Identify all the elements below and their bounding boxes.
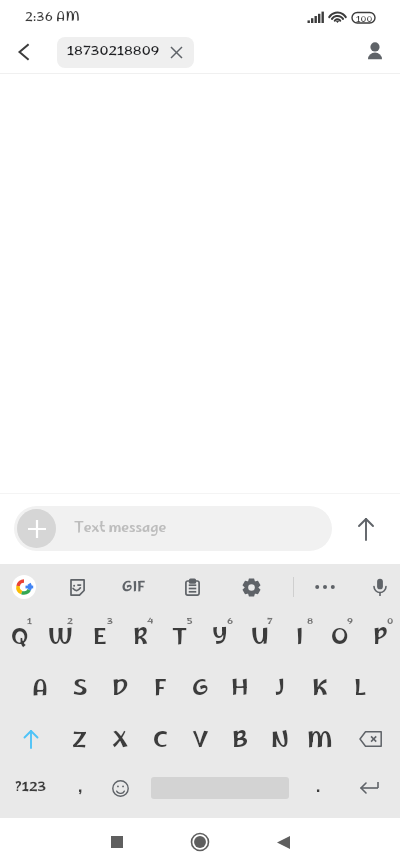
- button[interactable]: U: [240, 610, 280, 661]
- staticText: K: [312, 672, 328, 709]
- button[interactable]: J: [260, 661, 300, 712]
- staticText: 2: [67, 614, 73, 630]
- button[interactable]: Voice input: [363, 564, 397, 610]
- staticText: I: [296, 621, 304, 658]
- staticText: G: [192, 672, 209, 709]
- button[interactable]: ,: [60, 764, 100, 812]
- staticText: 100: [356, 13, 373, 28]
- staticText: 0: [387, 614, 394, 630]
- button[interactable]: I: [280, 610, 320, 661]
- staticText: 6: [227, 614, 234, 630]
- staticText: 3: [107, 614, 113, 630]
- staticText: X: [112, 724, 129, 761]
- staticText: GIF: [122, 577, 146, 600]
- button[interactable]: Y: [200, 610, 240, 661]
- button[interactable]: GIF: [117, 564, 151, 610]
- button[interactable]: Emoji: [100, 764, 140, 812]
- button[interactable]: 18730218809: [57, 37, 194, 68]
- button[interactable]: Q: [0, 610, 40, 661]
- button[interactable]: Google: [7, 564, 41, 610]
- staticText: 7: [267, 614, 273, 630]
- button[interactable]: Clipboard: [175, 564, 209, 610]
- button[interactable]: K: [300, 661, 340, 712]
- staticText: .: [316, 774, 321, 802]
- staticText: J: [275, 672, 285, 709]
- button[interactable]: Contact: [360, 37, 390, 67]
- staticText: ?123: [15, 777, 47, 800]
- staticText: D: [112, 672, 129, 709]
- staticText: W: [48, 621, 73, 658]
- staticText: Text message: [74, 517, 167, 541]
- button[interactable]: Stickers: [59, 564, 93, 610]
- button[interactable]: Send: [332, 506, 400, 551]
- staticText: N: [271, 724, 290, 761]
- button[interactable]: M: [300, 713, 340, 764]
- staticText: S: [73, 672, 88, 709]
- button[interactable]: .: [298, 764, 338, 812]
- button[interactable]: O: [320, 610, 360, 661]
- staticText: L: [354, 672, 367, 709]
- staticText: 4: [147, 614, 154, 630]
- staticText: 1: [27, 614, 32, 630]
- button[interactable]: Z: [60, 713, 100, 764]
- staticText: B: [232, 724, 249, 761]
- button[interactable]: A: [20, 661, 60, 712]
- button[interactable]: Home: [183, 825, 217, 859]
- button[interactable]: More options: [308, 564, 342, 610]
- staticText: A: [32, 672, 48, 709]
- button[interactable]: B: [220, 713, 260, 764]
- button[interactable]: T: [160, 610, 200, 661]
- button[interactable]: P: [360, 610, 400, 661]
- staticText: P: [373, 621, 388, 658]
- button[interactable]: Shift: [10, 713, 52, 764]
- staticText: Z: [72, 724, 88, 761]
- button[interactable]: H: [220, 661, 260, 712]
- button[interactable]: W: [40, 610, 80, 661]
- staticText: T: [172, 621, 188, 658]
- staticText: R: [133, 621, 148, 658]
- button[interactable]: Attach: [17, 509, 56, 548]
- staticText: 8: [307, 614, 314, 630]
- button[interactable]: C: [140, 713, 180, 764]
- button[interactable]: S: [60, 661, 100, 712]
- staticText: H: [231, 672, 249, 709]
- button[interactable]: N: [260, 713, 300, 764]
- button[interactable]: G: [180, 661, 220, 712]
- button[interactable]: R: [120, 610, 160, 661]
- button[interactable]: Back: [8, 36, 40, 68]
- staticText: U: [251, 621, 269, 658]
- staticText: E: [93, 621, 107, 658]
- button[interactable]: Settings: [234, 564, 268, 610]
- staticText: Q: [11, 621, 29, 658]
- staticText: V: [192, 724, 209, 761]
- button[interactable]: Enter: [346, 764, 392, 812]
- button[interactable]: V: [180, 713, 220, 764]
- button[interactable]: Back: [266, 825, 300, 859]
- button[interactable]: D: [100, 661, 140, 712]
- button[interactable]: Backspace: [350, 713, 392, 764]
- staticText: Y: [212, 621, 228, 658]
- button[interactable]: ?123: [8, 764, 54, 812]
- staticText: C: [153, 724, 168, 761]
- button[interactable]: Attach: [14, 506, 332, 551]
- button[interactable]: F: [140, 661, 180, 712]
- staticText: O: [331, 621, 349, 658]
- staticText: F: [154, 672, 167, 709]
- button[interactable]: Recents: [100, 825, 134, 859]
- button[interactable]: X: [100, 713, 140, 764]
- staticText: 2:36 AM: [25, 8, 81, 29]
- staticText: 18730218809: [67, 41, 171, 64]
- staticText: ,: [78, 774, 83, 802]
- button[interactable]: E: [80, 610, 120, 661]
- button[interactable]: L: [340, 661, 380, 712]
- staticText: M: [307, 724, 333, 761]
- staticText: 5: [187, 614, 193, 630]
- staticText: 9: [347, 614, 354, 630]
